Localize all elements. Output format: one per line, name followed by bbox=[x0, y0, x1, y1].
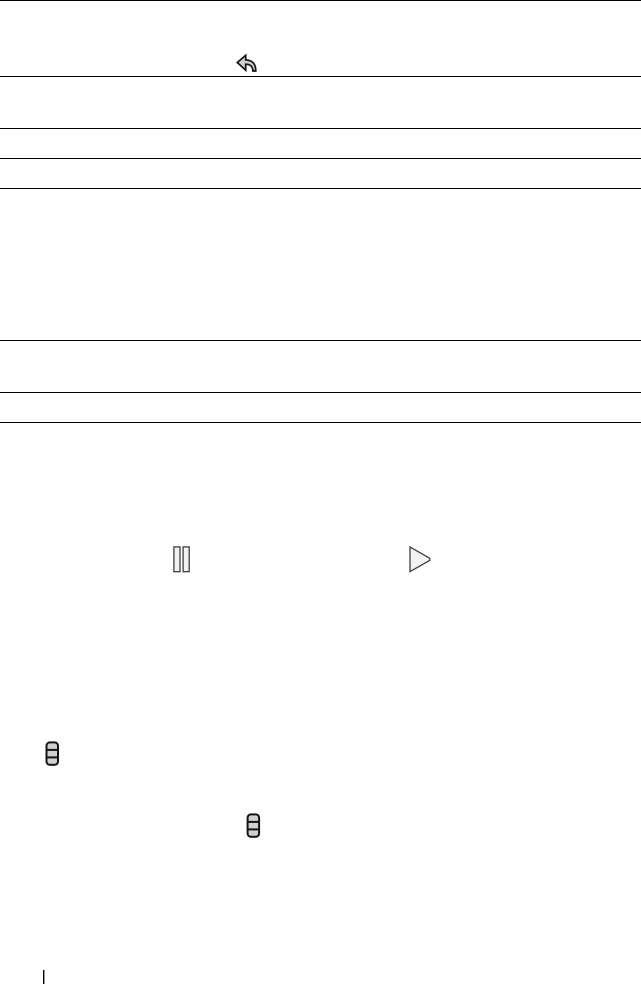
button[interactable]: Reorder rows bbox=[45, 741, 59, 766]
button[interactable]: Pause bbox=[173, 546, 190, 573]
button[interactable]: Reply bbox=[236, 54, 256, 71]
button[interactable]: Play bbox=[409, 546, 431, 572]
button[interactable]: Reorder rows bbox=[246, 813, 260, 838]
